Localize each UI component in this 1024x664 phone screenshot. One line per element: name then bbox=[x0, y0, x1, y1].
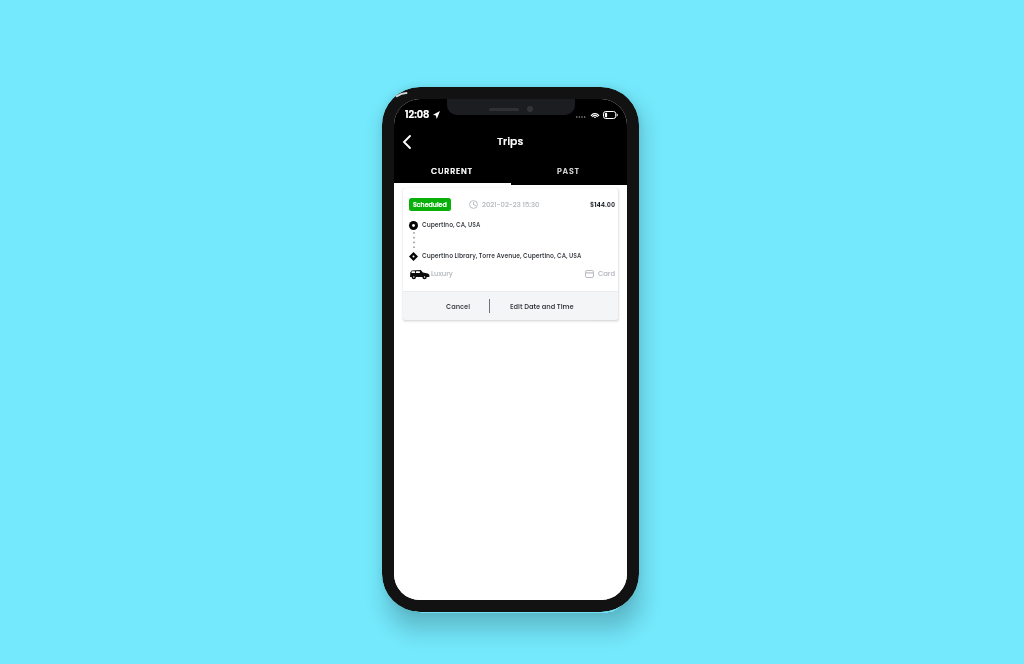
staticText: Card bbox=[598, 269, 616, 279]
button[interactable]: Edit Date and Time bbox=[490, 292, 618, 320]
staticText: Trips bbox=[497, 134, 524, 149]
staticText: Cancel bbox=[446, 302, 471, 311]
button[interactable]: Cancel bbox=[403, 292, 489, 320]
staticText: Scheduled bbox=[413, 200, 447, 209]
staticText: 12:08 bbox=[405, 108, 430, 122]
staticText: Cupertino Library, Torre Avenue, Cuperti… bbox=[422, 252, 582, 261]
staticText: CURRENT bbox=[431, 166, 473, 177]
staticText: Edit Date and Time bbox=[510, 302, 574, 311]
staticText: 2021-02-23 15:30 bbox=[482, 200, 540, 210]
staticText: $144.00 bbox=[590, 200, 616, 209]
button[interactable]: CURRENT bbox=[394, 158, 510, 185]
button[interactable]: PAST bbox=[510, 158, 627, 185]
button[interactable]: Scheduled bbox=[403, 188, 618, 320]
button[interactable]: Back bbox=[394, 129, 420, 155]
staticText: PAST bbox=[557, 166, 580, 177]
staticText: Luxury bbox=[431, 269, 453, 279]
staticText: Cupertino, CA, USA bbox=[422, 221, 481, 230]
